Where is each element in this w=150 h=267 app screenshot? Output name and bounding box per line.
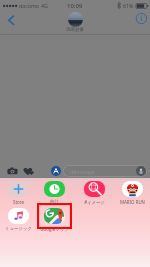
staticText: 4G (41, 2, 48, 9)
button[interactable]: ミュージック (0, 208, 36, 232)
staticText: 浅草封書 (66, 27, 84, 33)
staticText: Googleマップ (40, 226, 69, 232)
staticText: iMessage (70, 168, 95, 175)
button[interactable]: Details (132, 12, 150, 30)
button[interactable]: 浅草封書 (66, 11, 84, 33)
button[interactable]: App Store (51, 166, 61, 176)
staticText: 時計 (50, 199, 59, 205)
staticText: MARIO RUN (120, 199, 145, 205)
staticText: docomo (19, 2, 39, 9)
staticText: Store (13, 199, 24, 205)
button[interactable]: Camera (7, 166, 18, 177)
staticText: #イメージ (84, 199, 105, 205)
staticText: 61% (123, 2, 134, 9)
button[interactable]: 時計 (36, 181, 72, 205)
button[interactable]: Back (1, 11, 21, 33)
button[interactable]: iMessage (63, 165, 147, 177)
button[interactable]: Digital Touch (23, 166, 34, 177)
button[interactable]: Store (0, 181, 36, 205)
button[interactable]: Googleマップ (36, 208, 72, 232)
staticText: ミュージック (5, 226, 32, 232)
button[interactable]: Dictation (136, 166, 146, 176)
button[interactable]: MARIO RUN (114, 181, 150, 205)
button[interactable]: #イメージ (76, 181, 112, 205)
staticText: 10:09 (67, 2, 83, 10)
